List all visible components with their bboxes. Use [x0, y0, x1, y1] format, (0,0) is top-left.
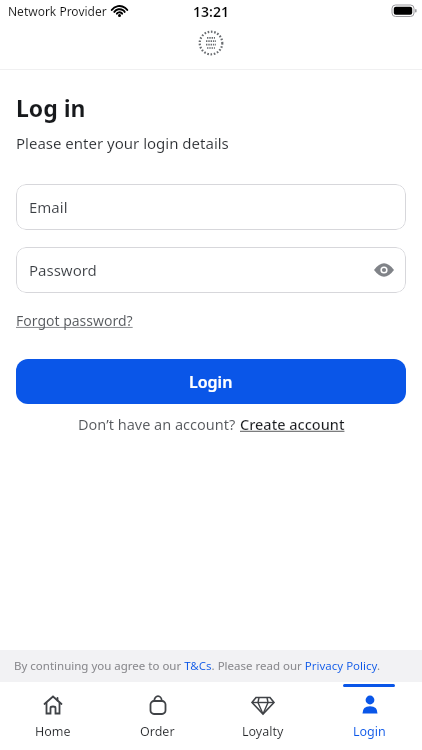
- staticText: Order: [140, 723, 175, 740]
- button[interactable]: Create account: [240, 414, 345, 434]
- staticText: Login: [353, 723, 386, 740]
- staticText: Loyalty: [242, 723, 284, 740]
- staticText: Login: [189, 371, 233, 393]
- button[interactable]: Loyalty: [210, 682, 316, 750]
- button[interactable]: Forgot password?: [16, 311, 133, 330]
- button[interactable]: By continuing you agree to our T&Cs. Ple…: [14, 658, 381, 674]
- staticText: Password: [29, 260, 97, 280]
- button[interactable]: Order: [105, 682, 210, 750]
- staticText: Log in: [16, 92, 86, 123]
- button[interactable]: Password: [16, 247, 406, 293]
- staticText: Email: [29, 197, 68, 217]
- staticText: Please enter your login details: [16, 133, 229, 153]
- staticText: Home: [35, 723, 71, 740]
- button[interactable]: Email: [16, 184, 406, 230]
- button[interactable]: Login: [16, 359, 406, 404]
- staticText: Don’t have an account?: [78, 414, 240, 434]
- staticText: 13:21: [193, 2, 229, 21]
- staticText: Network Provider: [8, 3, 107, 19]
- button[interactable]: Login: [316, 682, 422, 750]
- button[interactable]: Home: [0, 682, 105, 750]
